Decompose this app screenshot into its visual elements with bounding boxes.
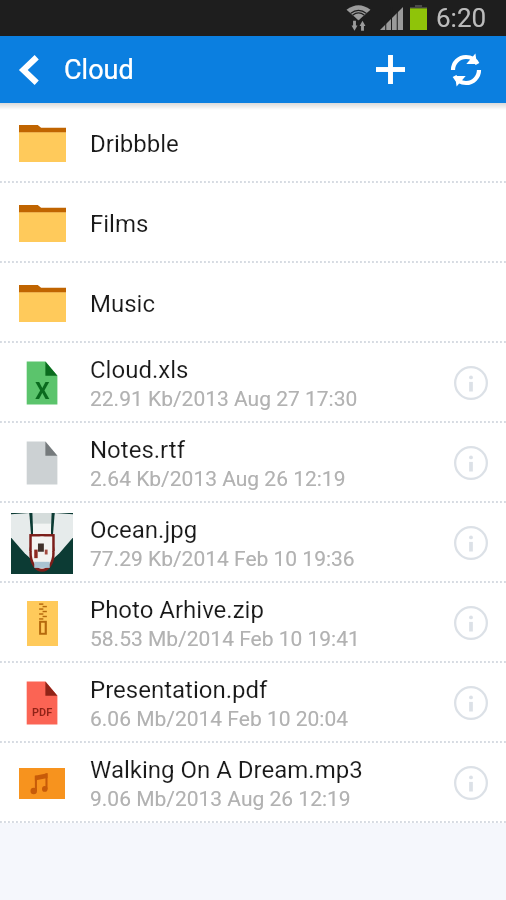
staticText: Photo Arhive.zip (90, 596, 264, 624)
staticText: 2.64 Kb/2013 Aug 26 12:19 (90, 467, 346, 492)
button[interactable]: Walking On A Dream.mp3 (0, 743, 506, 823)
staticText: Cloud.xls (90, 356, 189, 384)
staticText: Music (90, 290, 155, 318)
staticText: PDF (32, 706, 53, 719)
button[interactable]: Info (436, 343, 506, 423)
staticText: 6.06 Mb/2014 Feb 10 20:04 (90, 707, 348, 732)
button[interactable]: Info (436, 583, 506, 663)
staticText: Films (90, 210, 149, 238)
button[interactable]: Photo Arhive.zip (0, 583, 506, 663)
button[interactable]: Music (0, 263, 506, 343)
staticText: 6:20 (436, 3, 487, 33)
staticText: X (35, 378, 50, 405)
button[interactable]: Info (436, 743, 506, 823)
button[interactable]: Info (436, 503, 506, 583)
button[interactable]: Add (354, 36, 426, 103)
button[interactable]: X (0, 343, 506, 423)
button[interactable]: Info (436, 663, 506, 743)
staticText: Dribbble (90, 130, 179, 158)
button[interactable]: Notes.rtf (0, 423, 506, 503)
button[interactable]: Dribbble (0, 103, 506, 183)
staticText: Cloud (64, 54, 134, 86)
button[interactable]: Refresh (426, 36, 506, 103)
button[interactable]: PDF (0, 663, 506, 743)
staticText: 58.53 Mb/2014 Feb 10 19:41 (90, 627, 360, 652)
staticText: 22.91 Kb/2013 Aug 27 17:30 (90, 387, 358, 412)
staticText: Presentation.pdf (90, 676, 268, 704)
button[interactable]: Films (0, 183, 506, 263)
staticText: Walking On A Dream.mp3 (90, 756, 363, 784)
staticText: Notes.rtf (90, 436, 186, 464)
button[interactable]: Ocean.jpg (0, 503, 506, 583)
button[interactable]: Info (436, 423, 506, 503)
button[interactable]: Back (0, 36, 60, 103)
staticText: Ocean.jpg (90, 516, 198, 544)
staticText: 9.06 Mb/2013 Aug 26 12:19 (90, 787, 351, 812)
staticText: 77.29 Kb/2014 Feb 10 19:36 (90, 547, 355, 572)
